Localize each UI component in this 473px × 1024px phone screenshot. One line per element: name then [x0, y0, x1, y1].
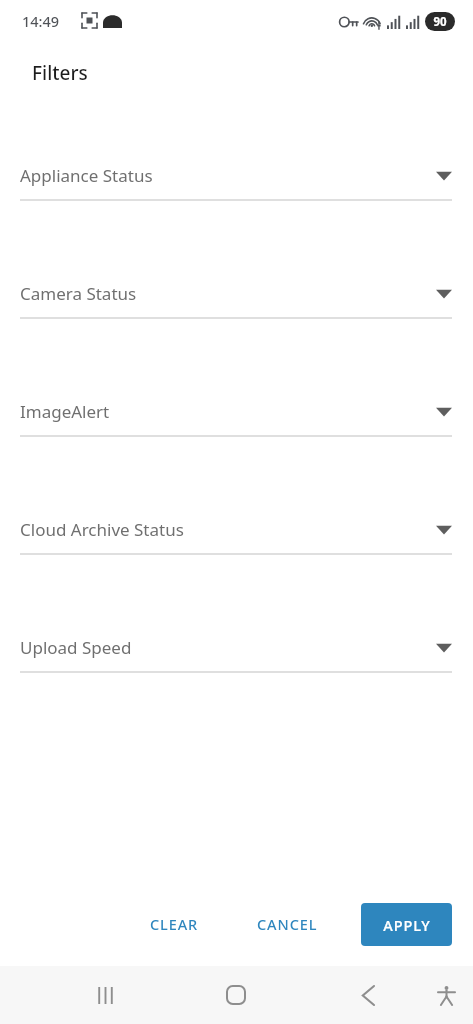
button[interactable]: Cloud Archive Status [0, 509, 473, 555]
staticText: Cloud Archive Status [20, 518, 184, 541]
staticText: Upload Speed [20, 636, 132, 659]
button[interactable]: Back [338, 966, 398, 1024]
button[interactable]: Home [206, 966, 266, 1024]
button[interactable]: CLEAR [132, 901, 216, 947]
staticText: APPLY [383, 915, 431, 935]
staticText: 90 [433, 14, 447, 30]
staticText: 14:49 [22, 11, 60, 31]
button[interactable]: APPLY [361, 903, 452, 946]
button[interactable]: Upload Speed [0, 627, 473, 673]
button[interactable]: Appliance Status [0, 155, 473, 201]
staticText: Filters [32, 60, 88, 86]
staticText: Camera Status [20, 282, 137, 305]
staticText: CLEAR [150, 914, 199, 934]
button[interactable]: Accessibility [419, 966, 473, 1024]
button[interactable]: ImageAlert [0, 391, 473, 437]
button[interactable]: Camera Status [0, 273, 473, 319]
staticText: Appliance Status [20, 164, 153, 187]
staticText: CANCEL [257, 914, 318, 934]
button[interactable]: CANCEL [241, 901, 333, 947]
staticText: ImageAlert [20, 400, 110, 423]
button[interactable]: Recent apps [75, 966, 135, 1024]
